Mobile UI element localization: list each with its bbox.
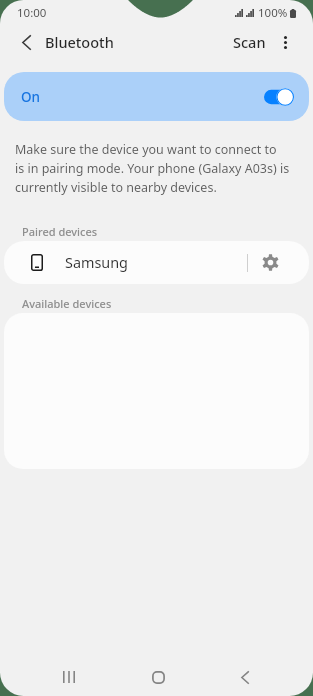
staticText: Available devices — [22, 296, 112, 311]
staticText: Bluetooth — [45, 32, 114, 52]
staticText: 100% — [258, 5, 288, 21]
button[interactable]: Navigate up — [9, 25, 43, 59]
staticText: Scan — [233, 32, 266, 52]
button[interactable]: Device settings — [248, 241, 292, 284]
button[interactable]: Samsung — [4, 241, 247, 284]
staticText: 10:00 — [17, 5, 47, 21]
button[interactable]: More options — [269, 26, 301, 58]
staticText: Paired devices — [22, 224, 98, 239]
button[interactable]: Back — [224, 656, 266, 696]
button[interactable]: On — [4, 72, 309, 121]
staticText: On — [21, 88, 41, 106]
button[interactable]: Home — [137, 656, 179, 696]
staticText: Samsung — [65, 253, 128, 273]
button[interactable]: Recents — [48, 656, 90, 696]
button[interactable]: Scan — [226, 25, 273, 59]
staticText: Make sure the device you want to connect… — [15, 141, 290, 195]
